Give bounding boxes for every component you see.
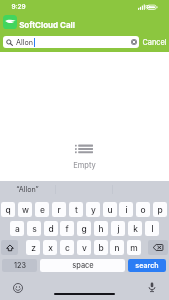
staticText: Empty [73,161,96,170]
staticText: r [57,205,61,215]
button[interactable]: m [127,240,141,255]
staticText: search [135,261,159,270]
staticText: Allon [16,38,33,47]
staticText: z [31,243,36,253]
button[interactable]: Cancel [141,36,168,48]
staticText: SoftCloud Call [19,20,75,30]
staticText: l [151,224,154,234]
staticText: a [15,224,20,234]
button[interactable]: z [26,240,40,255]
button[interactable]: s [27,221,41,236]
button[interactable]: p [153,202,167,217]
staticText: t [75,205,78,215]
button[interactable]: f [60,221,74,236]
button[interactable]: k [128,221,142,236]
button[interactable]: d [44,221,58,236]
button[interactable]: search [128,259,166,272]
staticText: g [81,224,87,234]
staticText: o [140,205,146,215]
button[interactable]: Allon [3,36,139,48]
staticText: d [48,224,54,234]
staticText: space [72,261,94,270]
button[interactable]: Emoji [13,283,23,293]
staticText: f [65,224,69,234]
staticText: v [82,243,87,253]
staticText: s [32,224,37,234]
staticText: Cancel [142,38,167,47]
button[interactable]: 123 [2,259,37,272]
button[interactable]: r [52,202,66,217]
staticText: 9:29 [11,3,26,11]
button[interactable]: y [86,202,100,217]
button[interactable]: e [35,202,49,217]
button[interactable]: a [10,221,24,236]
staticText: j [117,224,120,234]
staticText: u [107,205,113,215]
button[interactable]: n [110,240,124,255]
staticText: x [48,243,53,253]
staticText: “Allon” [16,185,39,194]
staticText: e [40,205,45,215]
staticText: k [133,224,138,234]
button[interactable]: x [43,240,57,255]
button[interactable]: w [18,202,32,217]
button[interactable]: q [1,202,15,217]
button[interactable]: h [94,221,108,236]
staticText: p [157,205,163,215]
staticText: c [65,243,70,253]
button[interactable]: u [103,202,117,217]
button[interactable]: i [119,202,133,217]
button[interactable]: space [40,259,125,272]
staticText: m [130,243,138,253]
button[interactable]: o [136,202,150,217]
button[interactable]: l [145,221,159,236]
button[interactable]: Backspace [148,240,168,255]
button[interactable]: b [94,240,108,255]
button[interactable]: “Allon” [0,181,55,197]
button[interactable]: Dictate [147,282,157,292]
staticText: n [114,243,120,253]
button[interactable]: j [111,221,125,236]
staticText: i [125,205,128,215]
staticText: q [5,205,11,215]
staticText: h [98,224,104,234]
button[interactable]: Clear text [131,39,137,45]
button[interactable]: t [69,202,83,217]
button[interactable]: v [77,240,91,255]
staticText: b [98,243,104,253]
button[interactable]: c [60,240,74,255]
staticText: w [22,205,29,215]
button[interactable]: g [77,221,91,236]
staticText: y [91,205,96,215]
staticText: 123 [14,261,26,270]
button[interactable]: Shift [1,240,18,255]
